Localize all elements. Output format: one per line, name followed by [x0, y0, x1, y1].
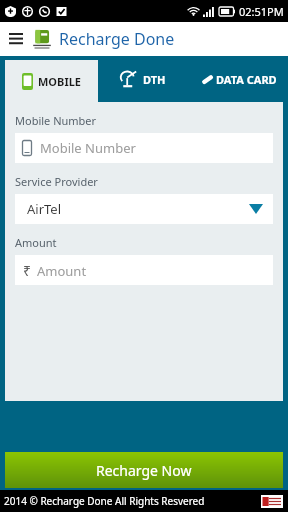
staticText: Mobile Number — [15, 113, 97, 128]
staticText: MOBILE — [38, 74, 81, 89]
staticText: 2014 © Recharge Done All Rights Resvered — [4, 494, 205, 508]
staticText: Amount — [37, 262, 87, 280]
staticText: Mobile Number — [40, 139, 136, 157]
button[interactable]: Service provider: AirTel — [15, 194, 273, 224]
staticText: Service Provider — [15, 174, 98, 189]
button[interactable]: MOBILE — [5, 60, 98, 102]
staticText: AirTel — [27, 200, 62, 218]
button[interactable]: DATA CARD — [188, 56, 288, 102]
staticText: 02:51PM — [239, 4, 284, 19]
staticText: DATA CARD — [216, 72, 277, 87]
button[interactable]: Open navigation menu — [4, 27, 28, 51]
staticText: Recharge Now — [96, 461, 192, 480]
staticText: DTH — [143, 72, 166, 87]
staticText: Recharge Done — [59, 28, 175, 50]
button[interactable]: DTH — [98, 56, 188, 102]
button[interactable]: Mobile Number — [15, 133, 273, 163]
button[interactable]: ₹ — [15, 255, 273, 285]
button[interactable]: Recharge Now — [5, 452, 283, 488]
staticText: ₹ — [23, 261, 32, 280]
staticText: Amount — [15, 235, 57, 250]
